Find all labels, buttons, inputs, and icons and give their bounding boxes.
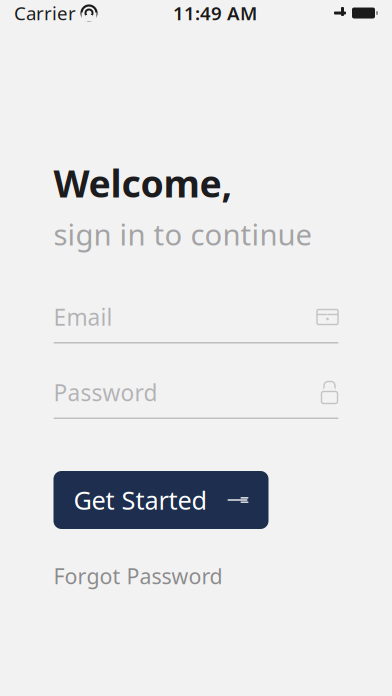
staticText: sign in to continue — [53, 214, 312, 253]
button[interactable]: Forgot Password — [53, 565, 222, 587]
staticText: 11:49 AM — [173, 1, 257, 25]
staticText: Get Started — [73, 483, 207, 517]
staticText: Email — [53, 302, 112, 332]
staticText: Forgot Password — [53, 562, 222, 590]
staticText: Carrier — [14, 1, 76, 25]
button[interactable]: Get Started — [53, 471, 268, 529]
staticText: Welcome, — [53, 158, 232, 208]
staticText: Password — [53, 377, 157, 407]
